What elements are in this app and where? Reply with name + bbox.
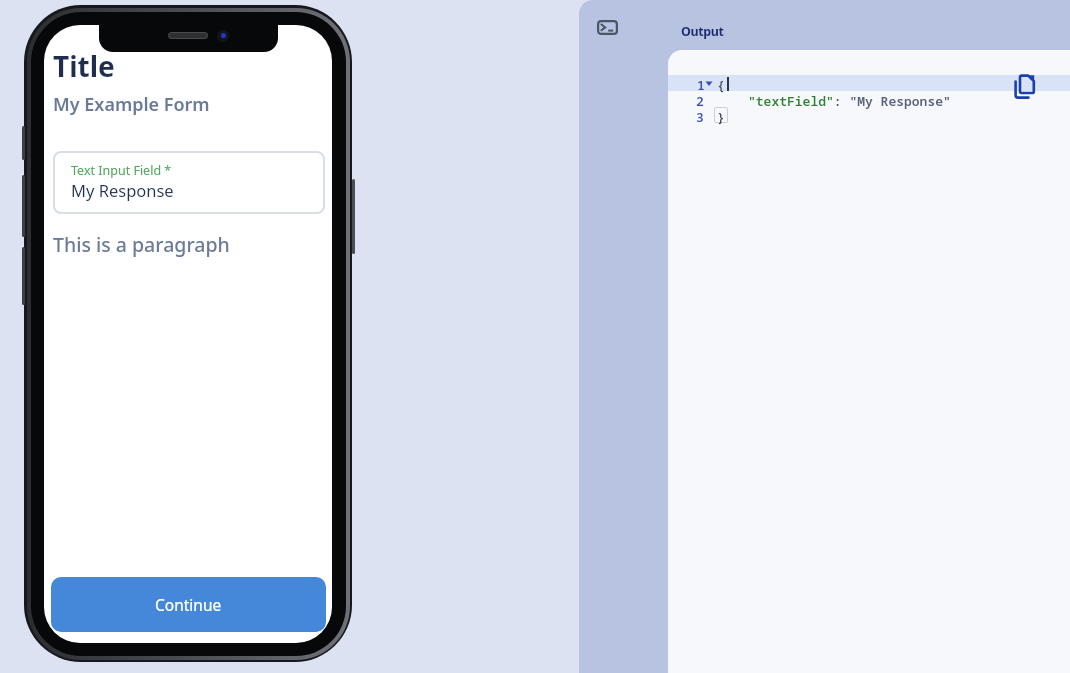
- staticText: 3: [696, 108, 704, 126]
- staticText: Title: [53, 47, 115, 85]
- staticText: Output: [681, 23, 724, 40]
- staticText: }: [717, 108, 725, 126]
- staticText: Text Input Field *: [71, 162, 172, 179]
- staticText: My Example Form: [53, 92, 210, 117]
- staticText: Continue: [155, 594, 222, 615]
- button[interactable]: Continue: [51, 577, 326, 632]
- staticText: My Response: [71, 179, 174, 201]
- staticText: This is a paragraph: [53, 231, 230, 258]
- staticText: 2: [696, 92, 704, 110]
- staticText: "textField": "My Response": [748, 92, 951, 110]
- button[interactable]: [1013, 74, 1037, 100]
- staticText: {: [717, 76, 725, 94]
- button[interactable]: [597, 20, 618, 35]
- staticText: 1: [697, 76, 705, 94]
- button[interactable]: Text Input Field *: [53, 151, 325, 214]
